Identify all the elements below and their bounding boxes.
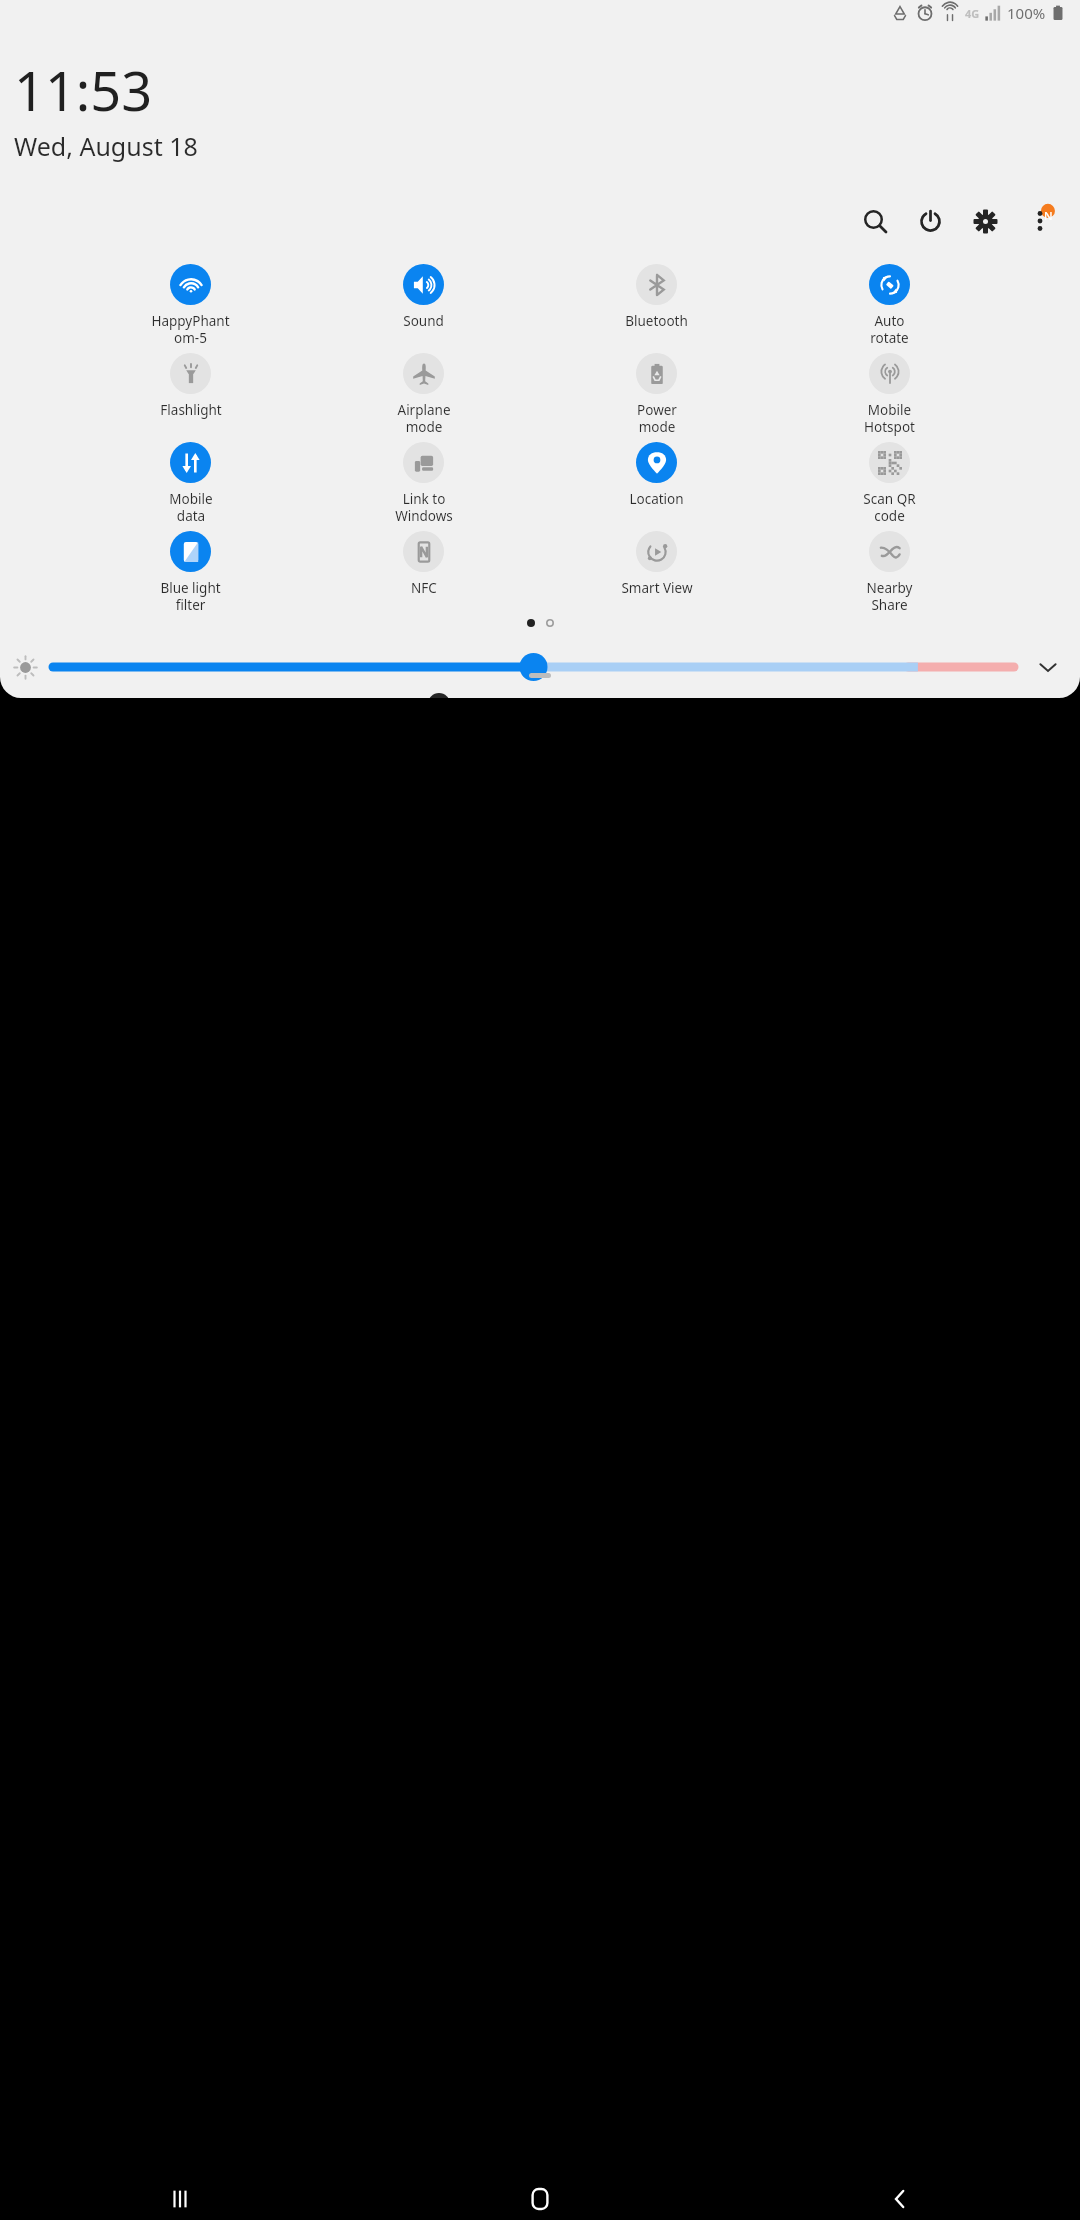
staticText: N — [1044, 208, 1053, 223]
staticText: Auto rotate — [870, 312, 909, 347]
staticText: 11:53 — [14, 53, 153, 127]
staticText: Wed, August 18 — [14, 129, 198, 163]
button[interactable]: Back — [870, 2178, 930, 2220]
staticText: 100% — [1007, 3, 1046, 23]
button[interactable]: Nearby Share — [847, 525, 932, 614]
button[interactable]: NFC — [381, 525, 466, 597]
button[interactable]: Home — [510, 2178, 570, 2220]
button[interactable]: Bluetooth — [614, 258, 699, 330]
button[interactable]: Blue light filter — [148, 525, 233, 614]
button[interactable]: Link to Windows — [381, 436, 466, 525]
button[interactable]: Smart View — [614, 525, 699, 597]
button[interactable]: Auto rotate — [847, 258, 932, 347]
staticText: Link to Windows — [395, 490, 453, 525]
staticText: Flashlight — [160, 401, 222, 419]
staticText: 4G — [965, 6, 980, 21]
staticText: Nearby Share — [847, 579, 932, 614]
staticText: Mobile data — [169, 490, 213, 525]
button[interactable]: Sound — [381, 258, 466, 330]
button[interactable] — [53, 647, 1014, 687]
button[interactable]: Airplane mode — [381, 347, 466, 436]
staticText: Power mode — [637, 401, 677, 436]
staticText: Bluetooth — [625, 312, 688, 330]
button[interactable]: Search — [853, 199, 897, 243]
button[interactable]: Location — [614, 436, 699, 508]
staticText: HappyPhantom-5 — [148, 312, 233, 347]
button[interactable]: Flashlight — [148, 347, 233, 419]
staticText: Location — [629, 490, 684, 508]
staticText: Sound — [403, 312, 444, 330]
button[interactable]: Recents — [150, 2178, 210, 2220]
staticText: Mobile Hotspot — [864, 401, 915, 436]
button[interactable]: Power mode — [614, 347, 699, 436]
staticText: Scan QR code — [847, 490, 932, 525]
button[interactable]: Mobile data — [148, 436, 233, 525]
staticText: Airplane mode — [397, 401, 451, 436]
button[interactable]: HappyPhantom-5 — [148, 258, 233, 347]
button[interactable]: Expand brightness settings — [1028, 647, 1068, 687]
button[interactable]: More options — [1018, 199, 1062, 243]
button[interactable]: Power off — [908, 199, 952, 243]
button[interactable]: Settings — [963, 199, 1007, 243]
staticText: Blue light filter — [160, 579, 221, 614]
staticText: NFC — [411, 579, 437, 597]
button[interactable]: Mobile Hotspot — [847, 347, 932, 436]
button[interactable]: Scan QR code — [847, 436, 932, 525]
staticText: Smart View — [621, 579, 693, 597]
